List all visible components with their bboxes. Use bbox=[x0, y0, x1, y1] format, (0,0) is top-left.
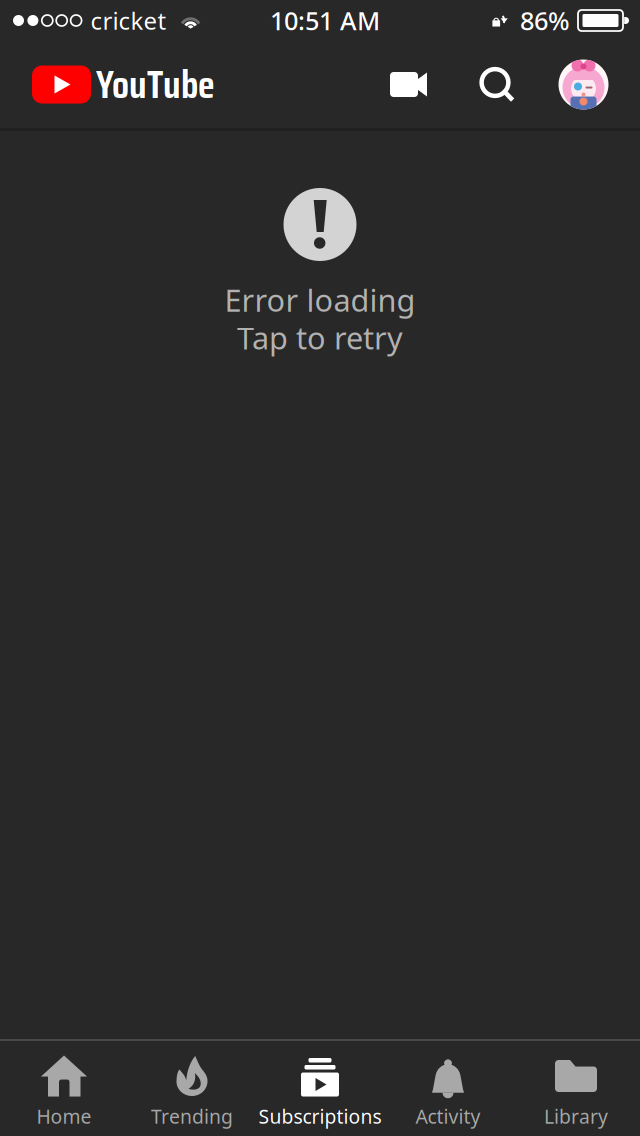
button[interactable]: YouTube bbox=[32, 54, 215, 115]
staticText: Tap to retry bbox=[237, 317, 403, 359]
button[interactable]: Activity bbox=[384, 1041, 512, 1136]
staticText: Library bbox=[544, 1103, 608, 1129]
staticText: YouTube bbox=[96, 54, 215, 115]
staticText: Error loading bbox=[224, 279, 415, 321]
staticText: Activity bbox=[415, 1103, 480, 1129]
staticText: 86% bbox=[520, 3, 570, 38]
button[interactable]: Home bbox=[0, 1041, 128, 1136]
staticText: 10:51 AM bbox=[270, 3, 380, 38]
staticText: Home bbox=[36, 1103, 91, 1129]
button[interactable]: Subscriptions bbox=[256, 1041, 384, 1136]
button[interactable]: Trending bbox=[128, 1041, 256, 1136]
staticText: cricket bbox=[91, 4, 167, 37]
staticText: Trending bbox=[151, 1103, 233, 1129]
button[interactable]: Library bbox=[512, 1041, 640, 1136]
button[interactable]: Account bbox=[550, 54, 616, 114]
button[interactable]: Error loading bbox=[0, 131, 640, 1039]
button[interactable]: Search bbox=[464, 54, 526, 114]
button[interactable]: Create bbox=[371, 54, 445, 114]
staticText: Subscriptions bbox=[258, 1103, 381, 1129]
